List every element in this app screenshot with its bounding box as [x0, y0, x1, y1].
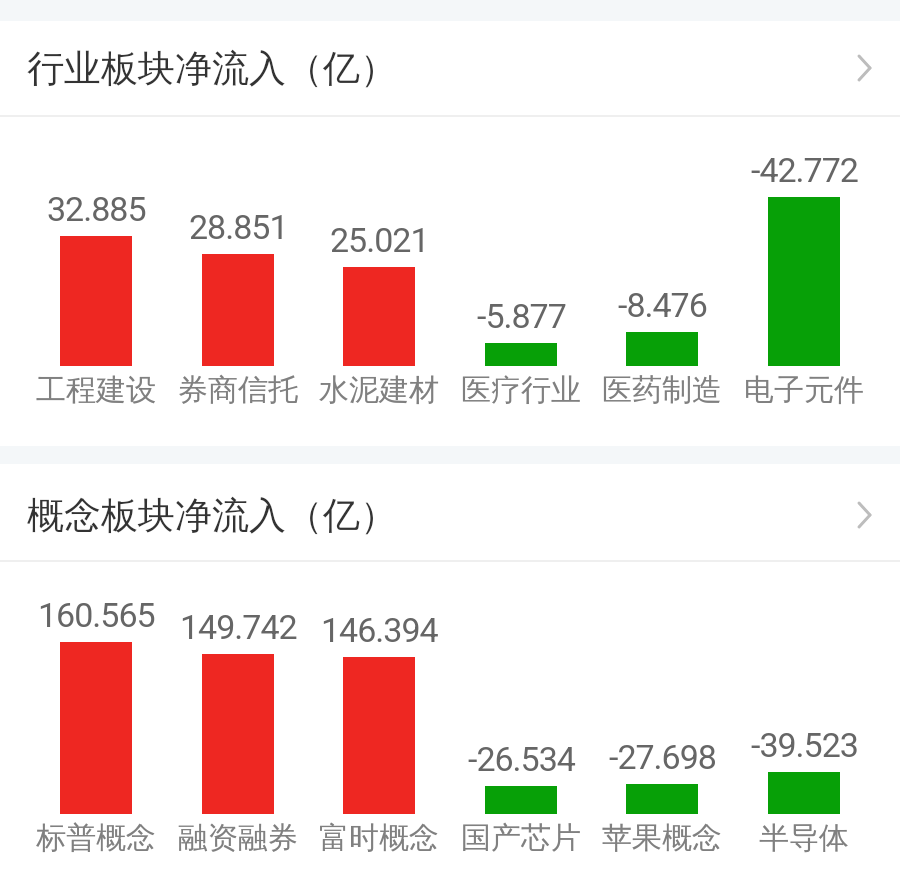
staticText: 行业板块净流入（亿）: [27, 45, 397, 92]
staticText: 工程建设: [36, 371, 156, 409]
staticText: 149.742: [180, 607, 297, 647]
staticText: -8.476: [618, 285, 707, 325]
staticText: 水泥建材: [319, 371, 439, 409]
staticText: 概念板块净流入（亿）: [27, 492, 397, 539]
button[interactable]: 行业板块净流入（亿）: [0, 21, 900, 115]
staticText: 券商信托: [178, 371, 298, 409]
staticText: 富时概念: [319, 819, 439, 857]
staticText: 146.394: [321, 610, 438, 650]
staticText: 电子元件: [744, 371, 864, 409]
staticText: 标普概念: [36, 819, 156, 857]
staticText: 25.021: [330, 220, 429, 260]
staticText: -39.523: [751, 725, 858, 765]
staticText: -27.698: [609, 737, 716, 777]
staticText: 160.565: [38, 595, 155, 635]
staticText: 苹果概念: [602, 819, 722, 857]
staticText: -42.772: [751, 150, 858, 190]
staticText: 医疗行业: [461, 371, 581, 409]
staticText: -26.534: [468, 739, 575, 779]
staticText: 国产芯片: [461, 819, 581, 857]
staticText: 融资融券: [178, 819, 298, 857]
button[interactable]: 概念板块净流入（亿）: [0, 468, 900, 562]
staticText: 半导体: [759, 819, 849, 857]
staticText: 32.885: [47, 189, 146, 229]
staticText: 28.851: [189, 207, 288, 247]
staticText: 医药制造: [602, 371, 722, 409]
staticText: -5.877: [477, 296, 566, 336]
